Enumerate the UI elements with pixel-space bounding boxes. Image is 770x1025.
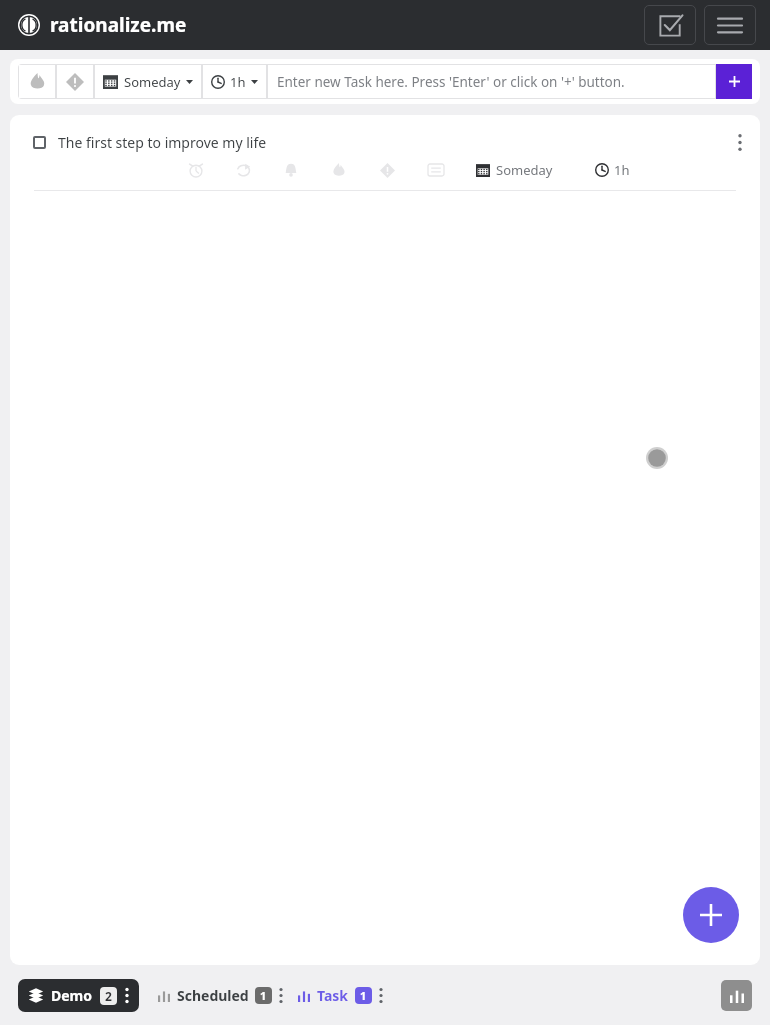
button[interactable]: Complete task xyxy=(10,133,760,152)
staticText: Demo xyxy=(51,986,93,1005)
button[interactable]: Enter new Task here. Press 'Enter' or cl… xyxy=(277,64,716,99)
staticText: Someday xyxy=(496,161,553,179)
button[interactable]: Add task xyxy=(716,64,752,99)
staticText: 1h xyxy=(230,73,246,91)
button[interactable]: Add xyxy=(683,887,739,943)
button[interactable]: Scheduled xyxy=(158,986,283,1005)
button[interactable]: Complete task xyxy=(33,136,46,149)
button[interactable]: Task xyxy=(298,986,383,1005)
staticText: 1 xyxy=(360,988,367,1003)
staticText: Task xyxy=(317,986,349,1005)
staticText: 2 xyxy=(105,988,112,1004)
button[interactable]: Tasks xyxy=(644,5,696,45)
staticText: Someday xyxy=(124,73,181,91)
staticText: 1 xyxy=(260,988,267,1003)
staticText: rationalize.me xyxy=(50,12,187,38)
staticText: Scheduled xyxy=(177,986,249,1005)
button[interactable]: Statistics xyxy=(721,980,752,1011)
button[interactable]: Someday xyxy=(103,64,193,99)
staticText: 1h xyxy=(614,161,630,179)
staticText: Enter new Task here. Press 'Enter' or cl… xyxy=(277,73,625,91)
button[interactable]: Demo xyxy=(28,986,129,1005)
button[interactable]: Menu xyxy=(704,5,756,45)
button[interactable]: 1h xyxy=(211,64,258,99)
button[interactable]: Importance xyxy=(56,64,94,99)
staticText: The first step to improve my life xyxy=(58,133,267,152)
button[interactable]: Priority xyxy=(18,64,56,99)
